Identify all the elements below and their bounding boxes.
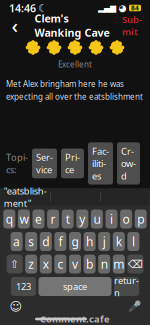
button[interactable]: "eatsblishment" <box>0 189 50 205</box>
staticText: Crowd <box>121 145 136 182</box>
staticText: o <box>123 211 130 227</box>
button[interactable]: space <box>38 277 111 296</box>
staticText: space <box>63 280 87 293</box>
staticText: Clem's Wanking Cave <box>34 11 109 40</box>
button[interactable]: Submit <box>120 16 144 34</box>
staticText: y <box>79 211 85 227</box>
staticText: e <box>35 211 42 227</box>
button[interactable]: m <box>113 254 125 273</box>
staticText: w <box>19 211 28 227</box>
staticText: q <box>6 211 13 227</box>
staticText: v <box>72 256 78 272</box>
staticText: Met Alex bringham here he was expecting … <box>6 79 143 102</box>
staticText: ◕ <box>118 3 126 13</box>
button[interactable]: s <box>25 232 37 251</box>
staticText: ⌫ <box>128 258 143 270</box>
button[interactable]: o <box>120 209 132 228</box>
staticText: p <box>137 211 144 227</box>
button[interactable]: z <box>25 254 37 273</box>
button[interactable]: Delete <box>127 254 143 273</box>
staticText: x <box>43 256 49 272</box>
button[interactable]: g <box>69 232 81 251</box>
staticText: 14:46 <box>9 1 36 15</box>
button[interactable]: w <box>18 209 30 228</box>
button[interactable]: f <box>54 232 66 251</box>
button[interactable]: c <box>54 254 66 273</box>
button[interactable]: p <box>135 209 147 228</box>
staticText: b <box>86 256 93 272</box>
staticText: f <box>58 233 62 249</box>
staticText <box>122 182 128 212</box>
staticText: ▂▄▆ <box>98 3 116 13</box>
button[interactable]: Facilities <box>88 142 113 184</box>
staticText: k <box>116 233 122 249</box>
button[interactable]: b <box>84 254 96 273</box>
staticText: ☾ <box>38 2 48 14</box>
button[interactable]: Dictation <box>126 300 142 313</box>
staticText: Topics: <box>6 151 28 176</box>
staticText: u <box>93 211 100 227</box>
button[interactable]: t <box>62 209 74 228</box>
staticText: Excellent <box>58 59 92 70</box>
button[interactable]: u <box>91 209 103 228</box>
staticText: "eatsblishment" <box>4 185 47 209</box>
staticText: s <box>28 233 34 249</box>
staticText: i <box>110 211 113 227</box>
staticText: m <box>113 256 124 272</box>
staticText: a <box>13 233 20 249</box>
staticText: 🎤 <box>127 300 140 313</box>
staticText <box>72 182 78 212</box>
button[interactable]: h <box>84 232 96 251</box>
staticText: r <box>51 211 56 227</box>
staticText: j <box>103 233 106 249</box>
staticText: ‹ <box>11 12 18 39</box>
staticText: return <box>114 274 139 299</box>
button[interactable]: a <box>11 232 23 251</box>
button[interactable]: e <box>32 209 44 228</box>
button[interactable]: x <box>40 254 52 273</box>
button[interactable]: Price <box>61 148 84 178</box>
button[interactable]: Back <box>6 16 24 34</box>
staticText: t <box>66 211 70 227</box>
button[interactable]: Emoji <box>8 300 24 313</box>
button[interactable]: Service <box>32 148 57 178</box>
button[interactable]: Star <box>88 40 103 55</box>
button[interactable]: return <box>114 277 139 296</box>
staticText: h <box>86 233 93 249</box>
staticText: ⇧ <box>10 258 19 270</box>
button[interactable]: n <box>98 254 110 273</box>
button[interactable]: l <box>127 232 139 251</box>
staticText: l <box>132 233 135 249</box>
staticText: c <box>57 256 63 272</box>
button[interactable]: v <box>69 254 81 273</box>
button[interactable]: r <box>47 209 59 228</box>
button[interactable]: Shift <box>7 254 23 273</box>
staticText: n <box>101 256 108 272</box>
staticText: ☺ <box>9 300 22 313</box>
staticText: Service <box>36 151 53 176</box>
button[interactable]: q <box>3 209 15 228</box>
staticText: 84 <box>131 4 139 12</box>
staticText: 123 <box>16 280 31 293</box>
staticText: g <box>71 233 78 249</box>
button[interactable]: Crowd <box>117 142 140 184</box>
button[interactable]: d <box>40 232 52 251</box>
staticText: z <box>28 256 34 272</box>
button[interactable]: Star <box>46 40 61 55</box>
button[interactable]: y <box>76 209 88 228</box>
button[interactable]: i <box>105 209 117 228</box>
button[interactable]: k <box>113 232 125 251</box>
staticText: Facilities <box>92 145 109 182</box>
staticText: Price <box>65 151 80 176</box>
staticText: Comment.cafe <box>40 313 110 325</box>
button[interactable]: Star <box>67 40 82 55</box>
button[interactable]: j <box>98 232 110 251</box>
button[interactable]: Star <box>109 40 124 55</box>
staticText: Submit <box>122 13 142 38</box>
button[interactable]: 123 <box>11 277 36 296</box>
button[interactable]: Star <box>25 40 40 55</box>
staticText: d <box>42 233 49 249</box>
